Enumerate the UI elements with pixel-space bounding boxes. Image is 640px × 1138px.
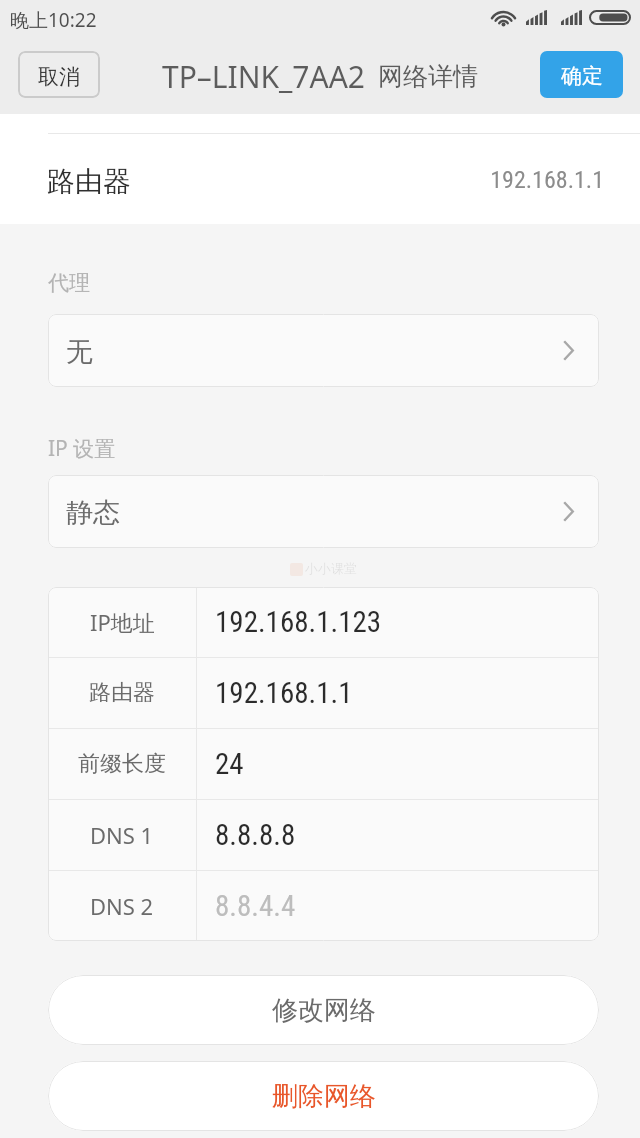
- staticText: 晚上10:22: [10, 7, 97, 33]
- staticText: 192.168.1.123: [215, 605, 382, 639]
- button[interactable]: 路由器: [0, 114, 640, 224]
- staticText: 删除网络: [272, 1080, 376, 1113]
- staticText: 路由器: [47, 164, 131, 199]
- button[interactable]: 修改网络: [48, 975, 599, 1045]
- button[interactable]: 取消: [18, 51, 100, 98]
- button[interactable]: IP地址: [48, 587, 599, 657]
- staticText: 8.8.8.8: [215, 818, 296, 852]
- button[interactable]: 前缀长度: [48, 729, 599, 799]
- staticText: IP 设置: [48, 434, 116, 463]
- staticText: 代理: [48, 270, 90, 296]
- button[interactable]: 无: [48, 314, 599, 387]
- staticText: IP地址: [90, 607, 155, 637]
- staticText: DNS 2: [90, 891, 154, 921]
- staticText: 确定: [561, 63, 603, 89]
- staticText: 取消: [38, 64, 80, 90]
- button[interactable]: DNS 2: [48, 871, 599, 941]
- staticText: 192.168.1.1: [215, 676, 353, 710]
- staticText: 小小课堂: [305, 560, 357, 576]
- staticText: 24: [215, 747, 244, 781]
- staticText: 路由器: [89, 679, 155, 707]
- button[interactable]: 删除网络: [48, 1061, 599, 1131]
- button[interactable]: 确定: [540, 51, 623, 98]
- button[interactable]: 静态: [48, 475, 599, 548]
- staticText: TP–LINK_7AA2 网络详情: [0, 56, 640, 97]
- staticText: 前缀长度: [78, 750, 166, 778]
- button[interactable]: DNS 1: [48, 800, 599, 870]
- staticText: 修改网络: [272, 994, 376, 1027]
- staticText: 静态: [66, 496, 120, 530]
- staticText: 192.168.1.1: [0, 166, 604, 194]
- staticText: DNS 1: [90, 820, 154, 850]
- staticText: 8.8.4.4: [215, 889, 296, 923]
- button[interactable]: 路由器: [48, 658, 599, 728]
- staticText: 无: [66, 335, 93, 369]
